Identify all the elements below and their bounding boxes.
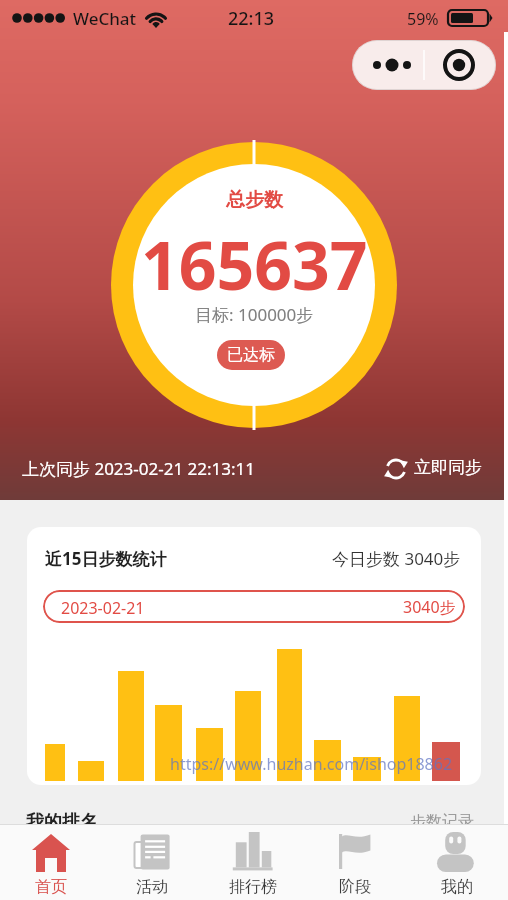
staticText: 22:13	[228, 6, 275, 31]
staticText: 立即同步	[414, 457, 482, 478]
staticText: 活动	[136, 877, 168, 897]
staticText: 目标: 100000步	[195, 303, 314, 326]
staticText: 59%	[407, 8, 439, 30]
staticText: 我的排名	[26, 811, 98, 834]
staticText: 上次同步 2023-02-21 22:13:11	[22, 457, 256, 480]
staticText: 排行榜	[229, 877, 277, 897]
staticText: WeChat	[73, 7, 137, 30]
button[interactable]: 活动	[101, 824, 202, 900]
staticText: 步数记录	[410, 812, 474, 832]
staticText: 2023-02-21	[61, 597, 145, 619]
button[interactable]: 立即同步	[384, 455, 482, 479]
staticText: 我的	[441, 877, 473, 897]
button[interactable]: 排行榜	[202, 824, 304, 900]
staticText: https://www.huzhan.com/ishop18862	[170, 753, 453, 775]
staticText: 今日步数 3040步	[332, 547, 461, 570]
staticText: 近15日步数统计	[45, 547, 167, 570]
button[interactable]: 阶段	[304, 824, 406, 900]
staticText: 总步数	[226, 188, 283, 212]
button[interactable]: 2023-02-21	[43, 590, 465, 623]
staticText: 3040步	[403, 596, 456, 618]
staticText: 165637	[141, 219, 368, 309]
button[interactable]	[352, 40, 496, 90]
staticText: 首页	[35, 877, 67, 897]
button[interactable]: 我的	[406, 824, 508, 900]
button[interactable]: 已达标	[217, 340, 285, 370]
staticText: 阶段	[339, 877, 371, 897]
staticText: 已达标	[227, 345, 275, 365]
button[interactable]: 首页	[0, 824, 101, 900]
